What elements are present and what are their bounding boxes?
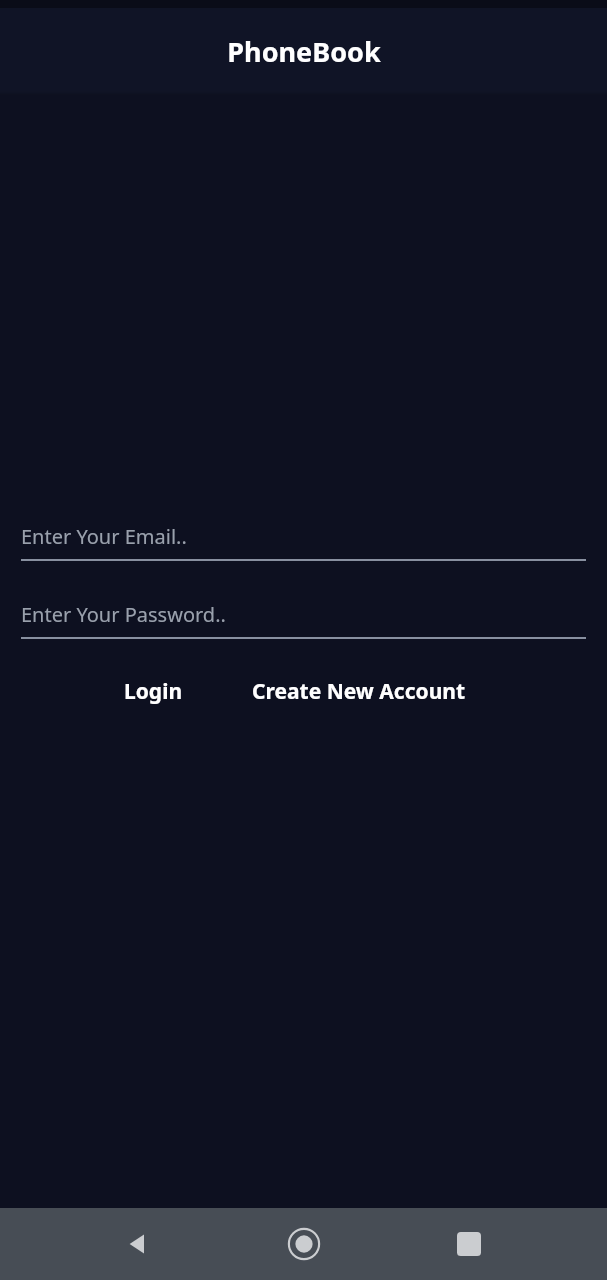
staticText: PhoneBook [227,33,381,70]
button[interactable]: Enter Your Email.. [21,523,586,561]
staticText: Enter Your Email.. [21,523,187,550]
staticText: Login [124,677,183,706]
staticText: Enter Your Password.. [21,601,226,628]
button[interactable]: Home [276,1216,332,1272]
button[interactable]: Login [110,669,197,714]
button[interactable]: Enter Your Password.. [21,601,586,639]
staticText: Create New Account [252,677,466,706]
button[interactable]: Create New Account [238,669,480,714]
button[interactable]: Recent apps [441,1216,497,1272]
button[interactable]: Back [110,1216,166,1272]
